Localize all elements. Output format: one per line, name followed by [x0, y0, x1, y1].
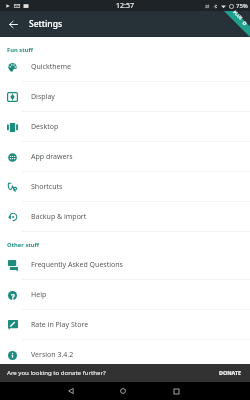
button[interactable]: Back	[62, 382, 80, 400]
staticText: PLUS	[232, 9, 244, 21]
button[interactable]: Back	[0, 11, 26, 37]
button[interactable]: Version 3.4.2	[0, 340, 250, 370]
button[interactable]: Backup & import	[0, 202, 250, 232]
button[interactable]: Desktop	[0, 112, 250, 142]
staticText: 75%	[236, 2, 248, 10]
staticText: Help	[31, 290, 47, 300]
button[interactable]: Plus	[0, 11, 250, 37]
button[interactable]: App drawers	[0, 142, 250, 172]
staticText: Frequently Asked Questions	[31, 260, 123, 270]
button[interactable]: Rate in Play Store	[0, 310, 250, 340]
staticText: Desktop	[31, 122, 59, 132]
staticText: Backup & import	[31, 212, 87, 222]
staticText: Settings	[29, 18, 63, 30]
button[interactable]: Display	[0, 82, 250, 112]
staticText: DONATE	[219, 369, 242, 376]
staticText: Are you looking to donate further?	[7, 368, 106, 376]
button[interactable]: Shortcuts	[0, 172, 250, 202]
button[interactable]: Quicktheme	[0, 52, 250, 82]
staticText: Rate in Play Store	[31, 320, 89, 330]
staticText: Fun stuff	[7, 46, 33, 54]
button[interactable]: DONATE	[217, 367, 244, 378]
button[interactable]: ?	[0, 280, 250, 310]
button[interactable]: Frequently Asked Questions	[0, 250, 250, 280]
button[interactable]: Home	[114, 382, 132, 400]
staticText: App drawers	[31, 152, 73, 162]
staticText: Other stuff	[7, 241, 40, 249]
button[interactable]: Recents	[167, 382, 185, 400]
staticText: ?	[11, 291, 15, 300]
staticText: Version 3.4.2	[31, 350, 74, 360]
staticText: 12:57	[116, 1, 134, 11]
staticText: Quicktheme	[31, 62, 71, 72]
staticText: Shortcuts	[31, 182, 63, 192]
staticText: Display	[31, 92, 55, 102]
